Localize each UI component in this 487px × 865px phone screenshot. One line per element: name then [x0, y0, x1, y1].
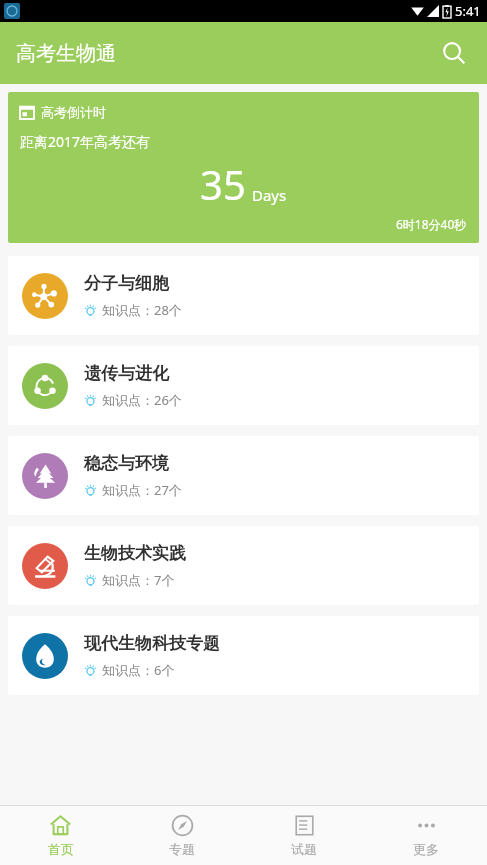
- button[interactable]: Search: [431, 30, 477, 76]
- staticText: 距离2017年高考还有: [20, 132, 151, 151]
- staticText: 知识点：7个: [102, 571, 175, 589]
- staticText: 生物技术实践: [84, 543, 186, 564]
- button[interactable]: 更多: [365, 806, 487, 865]
- staticText: 5:41: [455, 2, 481, 20]
- staticText: 6时18分40秒: [396, 216, 467, 232]
- staticText: 知识点：28个: [102, 301, 182, 319]
- staticText: 现代生物科技专题: [84, 633, 220, 654]
- staticText: 专题: [169, 841, 195, 857]
- button[interactable]: 稳态与环境: [8, 436, 479, 515]
- staticText: 知识点：6个: [102, 661, 175, 679]
- button[interactable]: 分子与细胞: [8, 256, 479, 335]
- button[interactable]: 现代生物科技专题: [8, 616, 479, 695]
- button[interactable]: 首页: [0, 806, 121, 865]
- staticText: 分子与细胞: [84, 273, 169, 294]
- staticText: 稳态与环境: [84, 453, 169, 474]
- staticText: 知识点：26个: [102, 391, 182, 409]
- staticText: Days: [252, 185, 287, 205]
- button[interactable]: 专题: [121, 806, 243, 865]
- staticText: 首页: [48, 841, 74, 857]
- button[interactable]: 试题: [243, 806, 365, 865]
- button[interactable]: 遗传与进化: [8, 346, 479, 425]
- staticText: 高考生物通: [16, 41, 116, 66]
- button[interactable]: 高考倒计时: [8, 92, 479, 243]
- staticText: 高考倒计时: [41, 104, 106, 120]
- staticText: 更多: [413, 841, 439, 857]
- staticText: 遗传与进化: [84, 363, 169, 384]
- button[interactable]: 生物技术实践: [8, 526, 479, 605]
- staticText: 试题: [291, 841, 317, 857]
- staticText: 知识点：27个: [102, 481, 182, 499]
- staticText: 35: [200, 157, 246, 211]
